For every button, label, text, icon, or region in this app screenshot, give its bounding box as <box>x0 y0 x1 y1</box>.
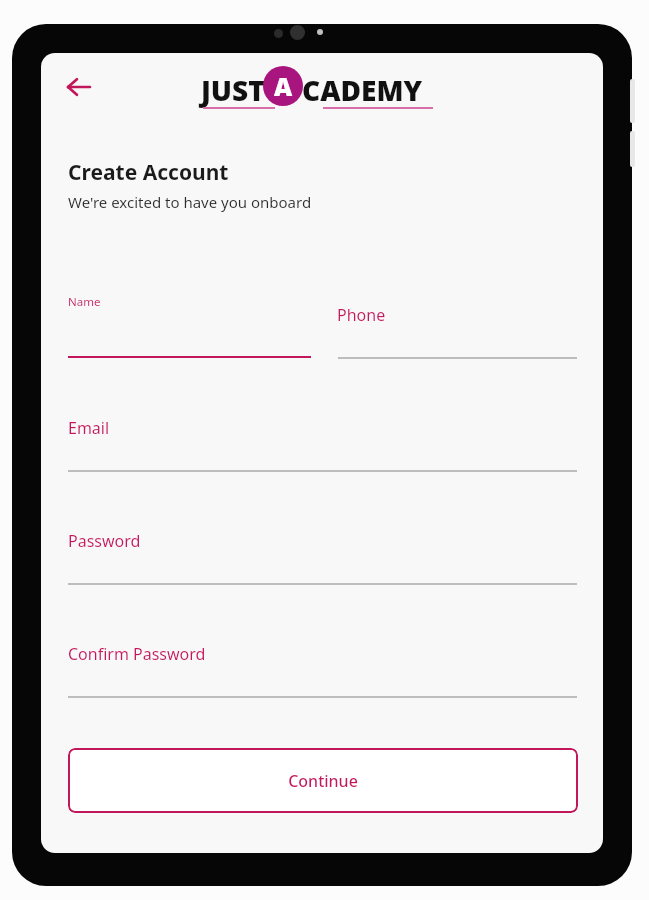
staticText: Password <box>68 530 141 552</box>
staticText: Confirm Password <box>68 643 206 665</box>
button[interactable]: Back <box>55 63 103 111</box>
staticText: Phone <box>337 304 386 326</box>
staticText: CADEMY <box>302 71 423 109</box>
button[interactable]: Continue <box>68 748 578 813</box>
staticText: A <box>274 69 293 103</box>
staticText: Email <box>68 417 110 439</box>
staticText: We're excited to have you onboard <box>68 192 312 212</box>
staticText: Create Account <box>68 158 229 187</box>
staticText: JUST <box>201 71 265 109</box>
staticText: Continue <box>288 770 358 792</box>
staticText: Name <box>68 294 101 310</box>
